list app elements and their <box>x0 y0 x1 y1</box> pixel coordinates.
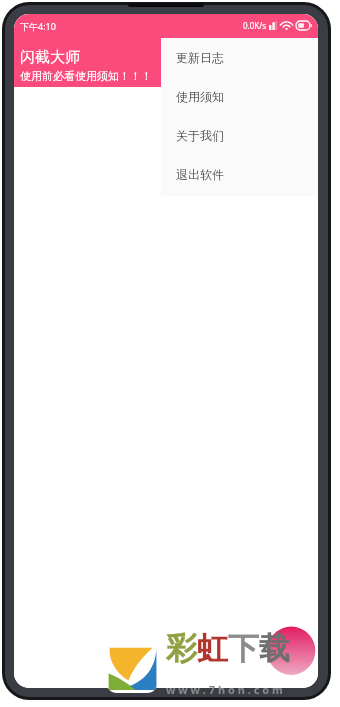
other: Battery <box>296 21 312 30</box>
staticText: 退出软件 <box>176 167 224 182</box>
button[interactable]: 退出软件 <box>161 155 318 194</box>
staticText: 使用前必看使用须知！！！ <box>20 69 152 83</box>
staticText: 关于我们 <box>176 128 224 143</box>
staticText: 载 <box>259 629 290 668</box>
other: Wi-Fi <box>281 21 292 30</box>
staticText: 闪截大师 <box>20 48 80 67</box>
other: Mobile signal <box>269 21 277 30</box>
button[interactable]: 关于我们 <box>161 116 318 155</box>
staticText: w w w . 7 h o n . c o m <box>166 682 283 697</box>
staticText: 0.0K/s <box>243 20 267 31</box>
staticText: 下午4:10 <box>20 20 56 32</box>
staticText: 下 <box>228 629 259 668</box>
staticText: 虹 <box>197 629 228 668</box>
button[interactable]: 使用须知 <box>161 77 318 116</box>
staticText: 使用须知 <box>176 89 224 104</box>
button[interactable]: 更新日志 <box>161 38 318 77</box>
staticText: 更新日志 <box>176 50 224 65</box>
staticText: 彩 <box>166 629 197 668</box>
